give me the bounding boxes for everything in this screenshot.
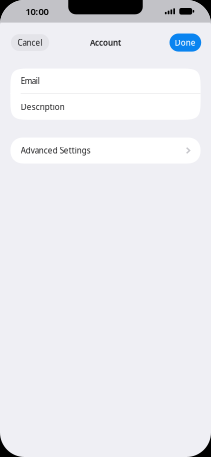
staticText: Cancel <box>17 37 42 48</box>
button[interactable]: Advanced Settings <box>10 137 201 163</box>
staticText: 10:00 <box>26 5 49 17</box>
staticText: Description <box>21 101 65 112</box>
staticText: Account <box>90 37 121 48</box>
button[interactable]: Done <box>169 33 201 52</box>
staticText: Done <box>175 37 196 48</box>
button[interactable]: Cancel <box>11 34 49 51</box>
staticText: Advanced Settings <box>21 145 91 156</box>
staticText: Email <box>21 75 40 86</box>
